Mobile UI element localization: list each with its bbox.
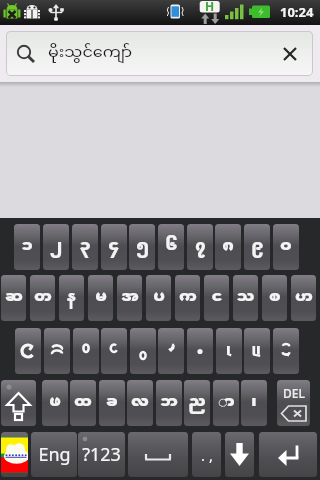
staticText: ပ (153, 287, 165, 309)
button[interactable]: ၈ (215, 224, 241, 270)
button[interactable]: Space (128, 432, 188, 477)
staticText: န (66, 287, 77, 309)
button[interactable]: န (59, 275, 84, 321)
button[interactable]: မ (88, 275, 113, 321)
button[interactable]: ဆ (1, 275, 26, 321)
staticText: DEL (283, 385, 305, 401)
button[interactable] (73, 328, 99, 374)
button[interactable]: ၊ (241, 380, 267, 426)
button[interactable]: ၆ (158, 224, 184, 270)
staticText: မ (95, 287, 107, 309)
button[interactable]: ဘ (156, 380, 182, 426)
button[interactable]: ၀ (273, 224, 299, 270)
button[interactable]: ၂ (43, 224, 69, 270)
button[interactable]: င (204, 275, 229, 321)
button[interactable] (44, 328, 70, 374)
button[interactable] (187, 328, 213, 374)
button[interactable]: စ (262, 275, 287, 321)
button[interactable] (158, 328, 184, 374)
staticText: ၅ (136, 236, 149, 258)
button[interactable]: Hide keyboard (225, 432, 254, 477)
button[interactable]: ၃ (72, 224, 98, 270)
staticText: သ (236, 287, 255, 309)
button[interactable]: ပ (146, 275, 171, 321)
staticText: ၄ (108, 236, 120, 258)
staticText: ၃ (79, 236, 91, 258)
button[interactable]: ၁ (14, 224, 40, 270)
button[interactable]: Change language (1, 432, 28, 477)
button[interactable] (101, 328, 127, 374)
staticText: ၆ (165, 236, 178, 258)
staticText: ည (188, 392, 206, 414)
staticText: ဘ (160, 392, 178, 414)
staticText: ၊ (251, 392, 257, 414)
button[interactable]: ာ (213, 380, 239, 426)
staticText: ?123 (82, 442, 121, 467)
button[interactable]: က (175, 275, 200, 321)
button[interactable]: ၇ (187, 224, 213, 270)
button[interactable]: မိုးသွင်ကျော် (6, 31, 313, 76)
staticText: ၁ (21, 236, 33, 258)
button[interactable]: Clear search (273, 34, 313, 74)
button[interactable]: . , (192, 432, 221, 477)
button[interactable]: Shift (1, 380, 36, 426)
button[interactable]: Eng (31, 432, 77, 477)
button[interactable]: Delete (277, 380, 310, 426)
staticText: င (211, 287, 223, 309)
staticText: ာ (218, 392, 235, 414)
button[interactable] (273, 328, 299, 374)
staticText: ထ (74, 392, 92, 414)
staticText: ဖ (49, 392, 61, 414)
button[interactable] (244, 328, 270, 374)
staticText: တ (34, 287, 52, 309)
button[interactable]: ထ (70, 380, 96, 426)
button[interactable]: ဖ (42, 380, 68, 426)
staticText: အ (121, 287, 139, 309)
button[interactable]: ၉ (244, 224, 270, 270)
button[interactable]: လ (127, 380, 153, 426)
button[interactable] (216, 328, 242, 374)
button[interactable]: ?123 (78, 432, 125, 477)
button[interactable]: ဟ (291, 275, 316, 321)
staticText: လ (131, 392, 149, 414)
staticText: H (205, 0, 215, 14)
staticText: . , (201, 445, 213, 465)
staticText: ၂ (50, 236, 62, 258)
staticText: စ (269, 287, 281, 309)
button[interactable]: ခ (99, 380, 125, 426)
staticText: ၇ (195, 236, 206, 258)
button[interactable]: တ (30, 275, 55, 321)
staticText: ၉ (251, 236, 264, 258)
staticText: က (179, 287, 197, 309)
staticText: Eng (38, 442, 71, 467)
staticText: ဟ (295, 287, 313, 309)
button[interactable] (130, 328, 156, 374)
button[interactable]: အ (117, 275, 142, 321)
button[interactable]: ည (184, 380, 210, 426)
button[interactable]: ၅ (129, 224, 155, 270)
staticText: ၈ (222, 236, 234, 258)
button[interactable]: သ (233, 275, 258, 321)
staticText: 10:24 (280, 3, 314, 21)
button[interactable] (15, 328, 41, 374)
staticText: ခ (106, 392, 118, 414)
staticText: ၀ (280, 236, 292, 258)
staticText: မိုးသွင်ကျော် (48, 42, 133, 64)
button[interactable]: Enter (259, 432, 317, 477)
button[interactable]: ၄ (101, 224, 127, 270)
staticText: ဆ (5, 287, 23, 309)
